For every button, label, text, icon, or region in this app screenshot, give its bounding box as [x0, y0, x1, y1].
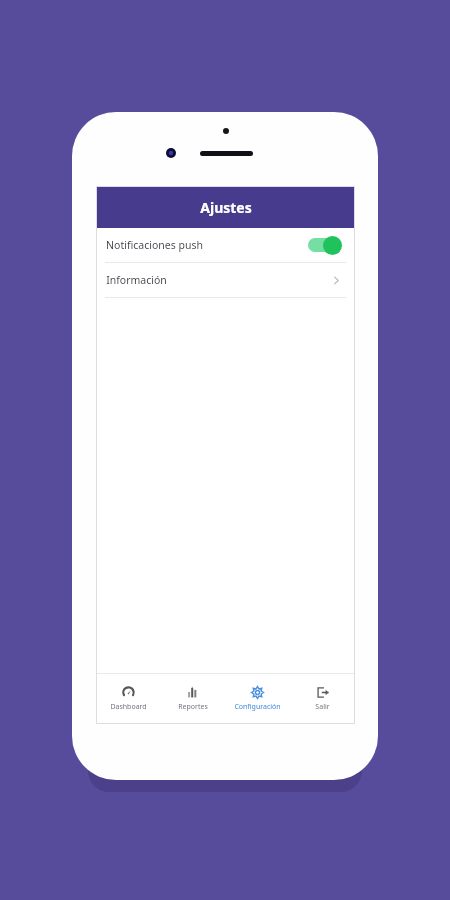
button[interactable]: Notificaciones push — [96, 228, 355, 262]
staticText: Reportes — [178, 702, 208, 712]
button[interactable]: Ajustes — [96, 186, 355, 228]
button[interactable]: Dashboard — [96, 686, 160, 712]
staticText: Dashboard — [110, 702, 147, 712]
button[interactable]: Información — [96, 263, 355, 297]
staticText: Información — [106, 273, 167, 287]
button[interactable]: Reportes — [160, 686, 225, 712]
staticText: Ajustes — [200, 198, 252, 217]
staticText: Configuración — [234, 702, 281, 712]
staticText: Salir — [315, 702, 330, 712]
staticText: Notificaciones push — [106, 238, 203, 252]
other: Notificaciones push toggle — [308, 235, 342, 255]
button[interactable]: Salir — [290, 686, 355, 712]
button[interactable]: Configuración — [225, 686, 290, 712]
